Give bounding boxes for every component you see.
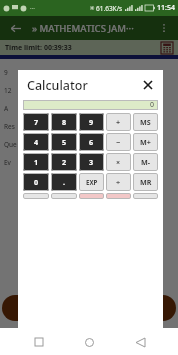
button[interactable]: More options — [156, 20, 172, 36]
staticText: 8 — [62, 117, 67, 127]
button[interactable]: + — [106, 113, 131, 131]
staticText: M- — [141, 157, 151, 167]
staticText: Time limit: 00:39:33 — [5, 43, 72, 53]
button[interactable] — [51, 193, 77, 199]
button[interactable]: 7 — [23, 113, 49, 131]
staticText: ÷ — [116, 177, 121, 187]
button[interactable]: Recent apps — [27, 330, 51, 354]
staticText: 2 — [62, 157, 67, 167]
staticText: 0 — [150, 100, 155, 110]
staticText: ✳ — [90, 5, 95, 11]
button[interactable]: MS — [133, 113, 158, 131]
button[interactable]: 8 — [51, 113, 77, 131]
staticText: + — [116, 117, 121, 127]
staticText: 6 — [89, 137, 94, 147]
button[interactable]: 2 — [51, 153, 77, 171]
staticText: » MATHEMATICS JAM··· — [32, 22, 134, 35]
button[interactable]: − — [106, 133, 131, 151]
staticText: 5 — [62, 137, 67, 147]
staticText: . — [63, 177, 66, 187]
button[interactable]: 0 — [23, 173, 49, 191]
staticText: 7 — [34, 117, 39, 127]
staticText: MS — [140, 117, 151, 127]
staticText: A — [4, 104, 9, 113]
button[interactable]: Close — [140, 77, 156, 93]
button[interactable]: Calculator — [160, 41, 174, 55]
staticText: MR — [140, 177, 152, 187]
button[interactable]: EXP — [79, 173, 104, 191]
button[interactable]: ÷ — [106, 173, 131, 191]
button[interactable] — [133, 193, 158, 199]
staticText: Calculator — [27, 77, 88, 94]
button[interactable]: 4 — [23, 133, 49, 151]
staticText: 12 — [4, 86, 12, 95]
button[interactable]: 5 — [51, 133, 77, 151]
staticText: × — [116, 157, 121, 167]
staticText: 1 — [34, 157, 39, 167]
staticText: 11:54 — [157, 3, 175, 13]
button[interactable] — [79, 193, 104, 199]
button[interactable]: M+ — [133, 133, 158, 151]
button[interactable]: M- — [133, 153, 158, 171]
staticText: ··· — [30, 4, 35, 12]
button[interactable]: 1 — [23, 153, 49, 171]
staticText: 3 — [89, 157, 94, 167]
button[interactable]: MR — [133, 173, 158, 191]
staticText: Res — [4, 122, 15, 131]
button[interactable]: 6 — [79, 133, 104, 151]
staticText: Que — [4, 140, 17, 149]
staticText: − — [116, 137, 121, 147]
button[interactable]: Home — [77, 330, 101, 354]
button[interactable]: × — [106, 153, 131, 171]
button[interactable] — [106, 193, 131, 199]
staticText: 0 — [34, 177, 39, 187]
staticText: 9 — [89, 117, 94, 127]
button[interactable]: . — [51, 173, 77, 191]
button[interactable]: 9 — [79, 113, 104, 131]
staticText: Ev — [4, 158, 11, 167]
staticText: 9 — [4, 68, 8, 77]
staticText: EXP — [86, 178, 98, 186]
staticText: 4 — [34, 137, 39, 147]
button[interactable] — [23, 193, 49, 199]
button[interactable]: Back — [6, 19, 24, 37]
button[interactable]: 3 — [79, 153, 104, 171]
staticText: M+ — [140, 137, 151, 147]
button[interactable]: Back — [128, 330, 152, 354]
staticText: 61.63K/s — [96, 4, 123, 13]
